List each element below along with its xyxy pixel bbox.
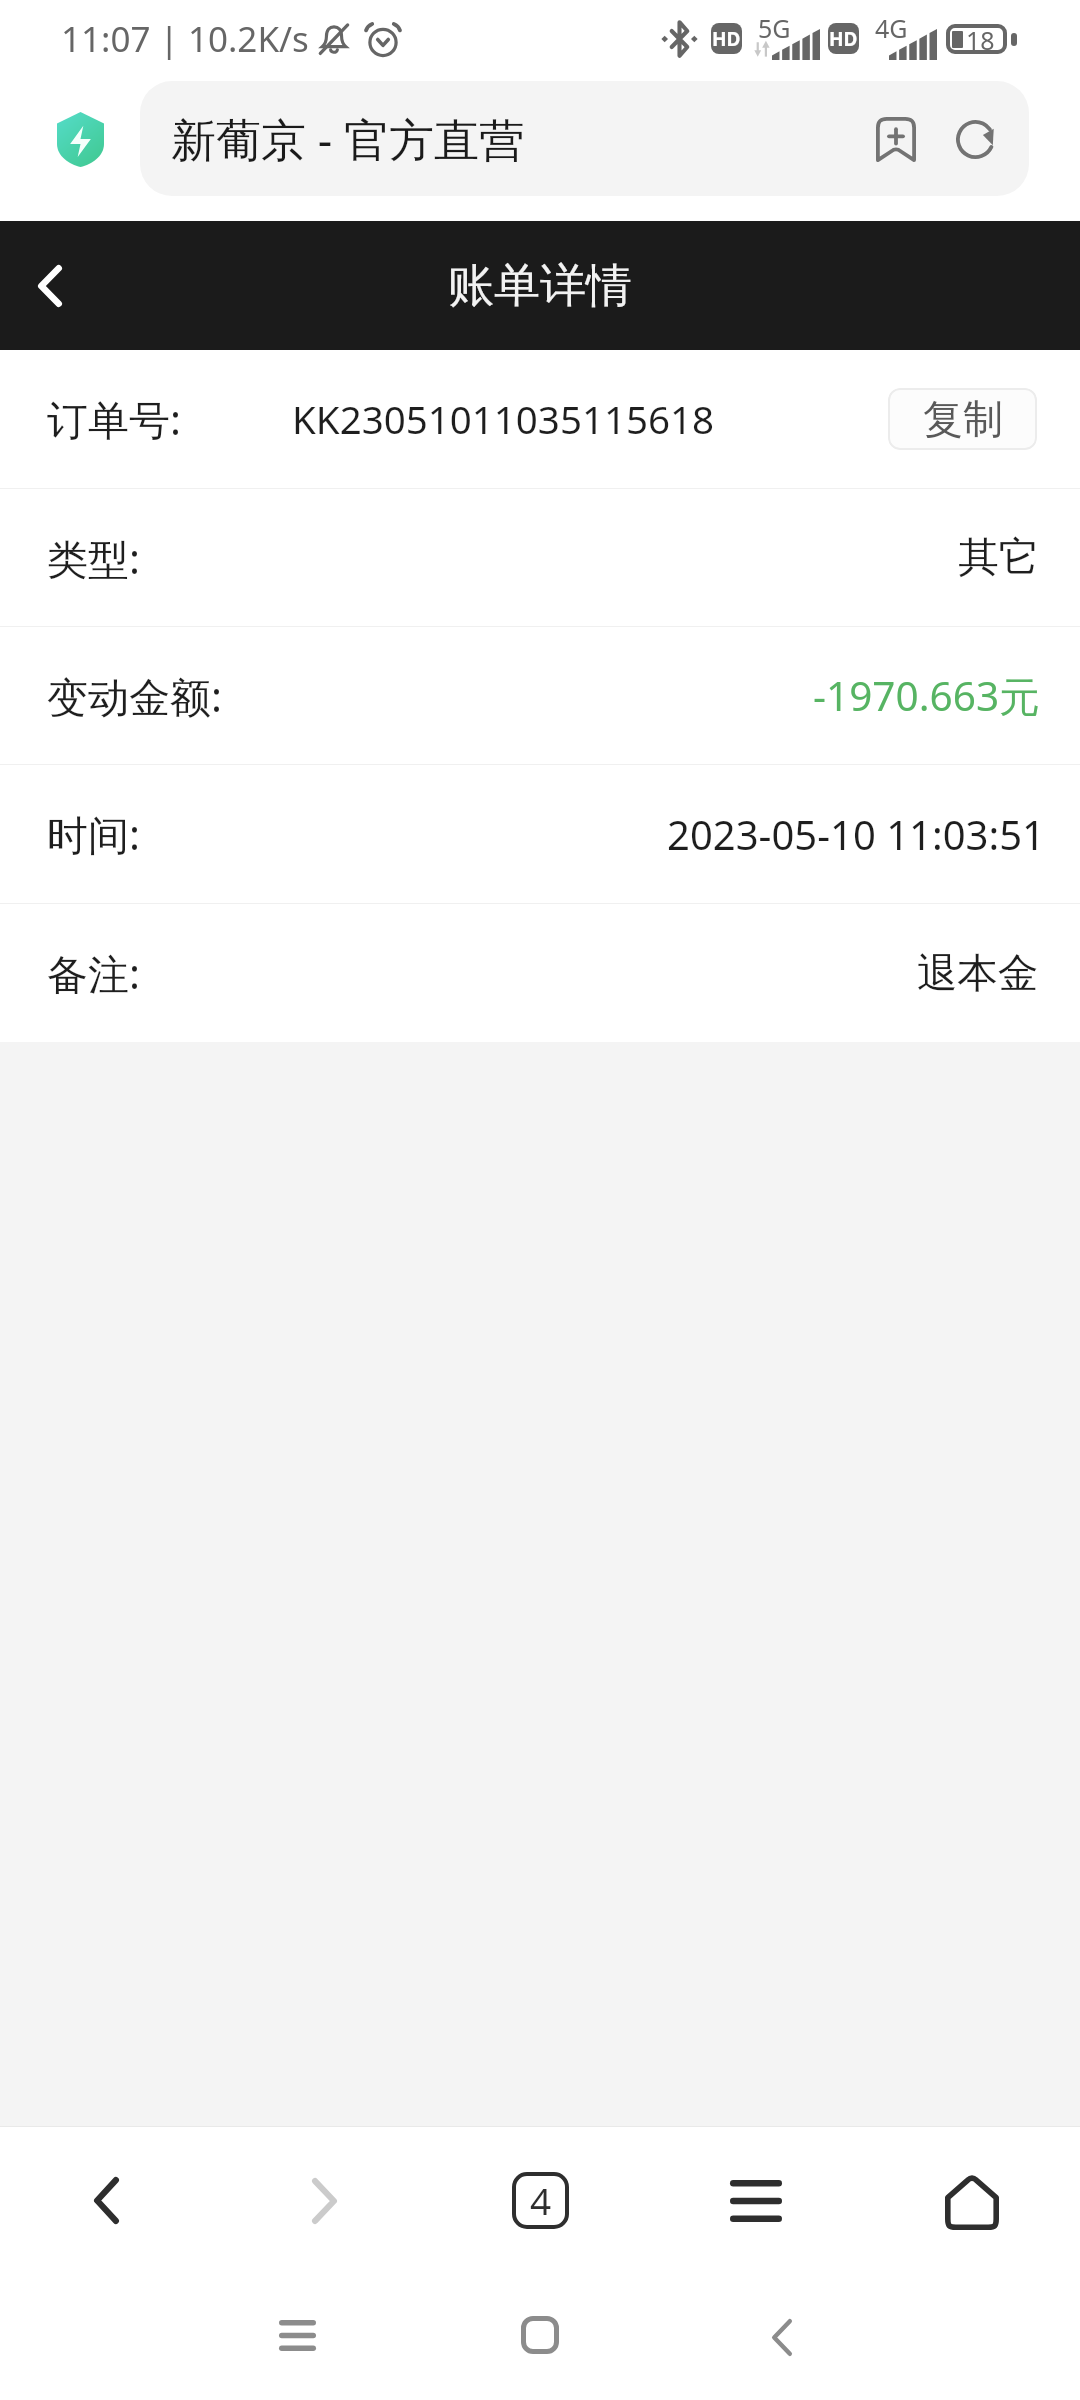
button[interactable]: Menu: [648, 2127, 864, 2274]
staticText: 4: [530, 2175, 552, 2225]
button[interactable]: Back: [727, 2282, 837, 2392]
button[interactable]: 复制: [888, 388, 1037, 450]
staticText: HD: [712, 26, 741, 52]
button[interactable]: Home: [864, 2127, 1080, 2274]
staticText: 18: [966, 23, 995, 53]
staticText: 时间:: [47, 806, 140, 862]
staticText: 退本金: [917, 948, 1039, 999]
button[interactable]: 时间:: [0, 765, 1080, 903]
staticText: KK23051011035115618: [292, 393, 888, 445]
staticText: 订单号:: [47, 391, 181, 447]
button[interactable]: 新葡京 - 官方直营: [140, 81, 1029, 196]
staticText: 类型:: [47, 530, 140, 586]
button[interactable]: Refresh: [947, 111, 1003, 167]
staticText: 其它: [958, 532, 1039, 583]
button[interactable]: Forward: [216, 2127, 432, 2274]
button[interactable]: Back: [14, 250, 86, 322]
staticText: 账单详情: [448, 257, 632, 315]
staticText: 11:07 | 10.2K/s: [61, 15, 309, 63]
button[interactable]: 备注:: [0, 904, 1080, 1042]
staticText: 4G: [875, 11, 908, 45]
button[interactable]: Tabs, 4 open: [432, 2127, 648, 2274]
button[interactable]: 类型:: [0, 489, 1080, 626]
staticText: 新葡京 - 官方直营: [171, 108, 868, 169]
button[interactable]: 订单号:: [0, 350, 1080, 488]
staticText: 复制: [923, 394, 1003, 444]
staticText: 变动金额:: [47, 668, 222, 724]
staticText: HD: [829, 26, 858, 52]
staticText: -1970.663元: [813, 668, 1040, 723]
staticText: 5G: [758, 11, 791, 45]
button[interactable]: 变动金额:: [0, 627, 1080, 764]
staticText: 2023-05-10 11:03:51: [667, 807, 1045, 861]
button[interactable]: Home: [485, 2280, 595, 2390]
button[interactable]: Add bookmark: [868, 111, 924, 167]
other: Secure site: [57, 112, 104, 167]
button[interactable]: Recent apps: [242, 2280, 352, 2390]
staticText: 备注:: [47, 945, 140, 1001]
button[interactable]: Back: [0, 2127, 216, 2274]
